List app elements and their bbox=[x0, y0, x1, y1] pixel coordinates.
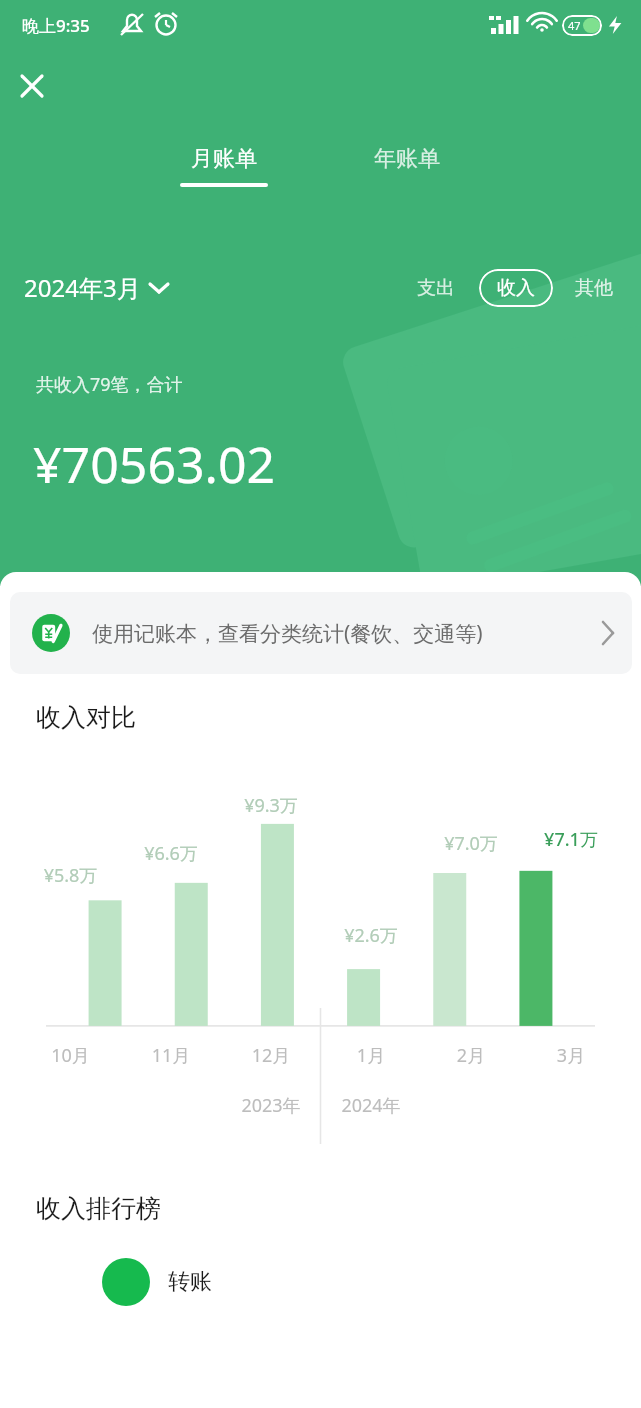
staticText: ¥6.6万 bbox=[121, 841, 221, 866]
staticText: ¥70563.02 bbox=[33, 430, 276, 498]
button[interactable]: 转账 bbox=[0, 1258, 641, 1306]
button[interactable]: 月账单 bbox=[163, 145, 285, 211]
staticText: 11月 bbox=[121, 1043, 221, 1068]
staticText: 年账单 bbox=[374, 145, 440, 173]
staticText: 转账 bbox=[168, 1268, 212, 1296]
staticText: 使用记账本，查看分类统计(餐饮、交通等) bbox=[92, 619, 590, 648]
staticText: ¥5.8万 bbox=[20, 863, 121, 888]
button[interactable]: 关闭 bbox=[6, 60, 58, 112]
staticText: 月账单 bbox=[191, 145, 257, 173]
staticText: 10月 bbox=[20, 1043, 121, 1068]
staticText: 1月 bbox=[321, 1043, 421, 1068]
staticText: 收入排行榜 bbox=[36, 1193, 161, 1224]
staticText: 2024年 bbox=[321, 1093, 421, 1118]
staticText: ¥7.1万 bbox=[521, 827, 621, 852]
staticText: 晚上9:35 bbox=[22, 14, 90, 37]
button[interactable]: 年账单 bbox=[348, 145, 466, 195]
staticText: 其他 bbox=[575, 276, 613, 300]
staticText: 12月 bbox=[221, 1043, 321, 1068]
staticText: 共收入79笔，合计 bbox=[36, 372, 183, 397]
staticText: 3月 bbox=[521, 1043, 621, 1068]
staticText: 2024年3月 bbox=[24, 271, 141, 304]
staticText: ¥2.6万 bbox=[321, 923, 421, 948]
staticText: 收入对比 bbox=[36, 702, 136, 733]
staticText: 2月 bbox=[421, 1043, 521, 1068]
staticText: 收入 bbox=[497, 276, 535, 300]
button[interactable]: 使用记账本，查看分类统计(餐饮、交通等) bbox=[10, 592, 632, 674]
staticText: ¥7.0万 bbox=[421, 831, 521, 856]
button[interactable]: 收入 bbox=[479, 269, 553, 307]
button[interactable]: 其他 bbox=[567, 268, 621, 308]
staticText: ¥9.3万 bbox=[221, 793, 321, 818]
button[interactable]: 支出 bbox=[407, 268, 465, 308]
staticText: 47 bbox=[568, 18, 581, 33]
staticText: 支出 bbox=[417, 276, 455, 300]
button[interactable]: 2024年3月 bbox=[22, 265, 171, 310]
staticText: 2023年 bbox=[221, 1093, 321, 1118]
